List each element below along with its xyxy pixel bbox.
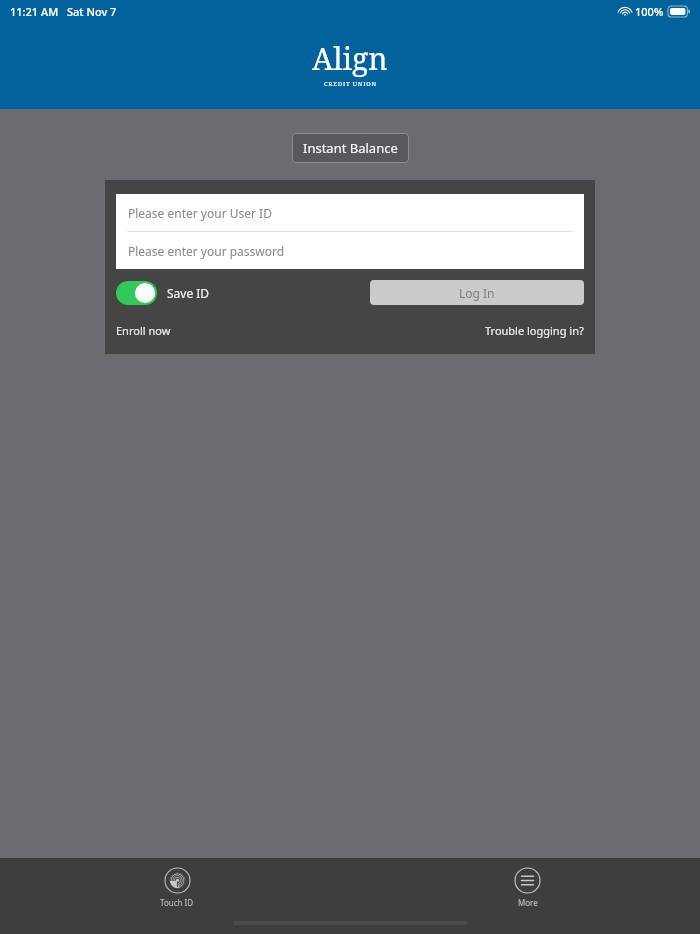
button[interactable]: More	[505, 864, 550, 912]
staticText: Log In	[459, 285, 495, 301]
button[interactable]: Save ID	[116, 281, 210, 305]
button[interactable]: Please enter your User ID	[116, 194, 584, 231]
button[interactable]: Please enter your password	[116, 232, 584, 269]
staticText: Align	[312, 38, 388, 79]
staticText: Trouble logging in?	[485, 323, 584, 338]
staticText: Touch ID	[160, 897, 194, 908]
staticText: CREDIT UNION	[324, 80, 377, 88]
staticText: Please enter your password	[128, 243, 285, 259]
staticText: Enroll now	[116, 323, 171, 338]
staticText: More	[518, 897, 538, 908]
button[interactable]: Touch ID	[150, 864, 204, 912]
button[interactable]: Enroll now	[116, 323, 171, 338]
button[interactable]: Log In	[370, 280, 584, 305]
staticText: Save ID	[167, 285, 210, 301]
button[interactable]: Trouble logging in?	[485, 323, 584, 338]
staticText: Please enter your User ID	[128, 205, 272, 221]
staticText: 11:21 AM	[10, 4, 59, 19]
staticText: Sat Nov 7	[67, 4, 117, 19]
button[interactable]: Instant Balance	[292, 133, 409, 163]
staticText: 100%	[635, 4, 664, 19]
staticText: Instant Balance	[303, 139, 398, 157]
